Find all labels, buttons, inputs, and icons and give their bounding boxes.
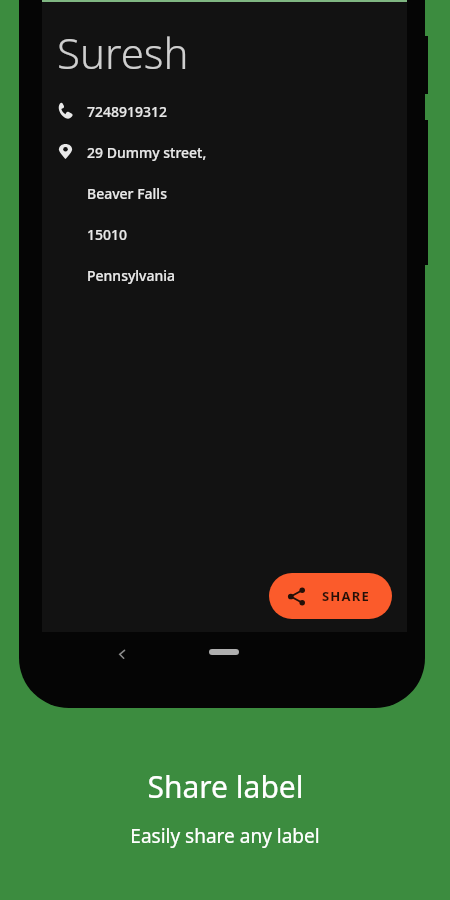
staticText: Share label <box>147 766 304 807</box>
staticText: Beaver Falls <box>87 184 167 203</box>
staticText: SHARE <box>322 587 370 605</box>
staticText: 15010 <box>87 225 128 244</box>
button[interactable]: 29 Dummy street, <box>42 141 407 289</box>
button[interactable]: SHARE <box>269 573 392 619</box>
staticText: Easily share any label <box>130 823 320 849</box>
staticText: 7248919312 <box>87 102 168 121</box>
staticText: 29 Dummy street, <box>87 143 207 162</box>
staticText: Pennsylvania <box>87 266 176 285</box>
button[interactable]: Back <box>104 636 140 672</box>
button[interactable]: Home <box>196 640 252 664</box>
button[interactable]: 7248919312 <box>42 98 407 125</box>
staticText: Suresh <box>57 24 189 81</box>
